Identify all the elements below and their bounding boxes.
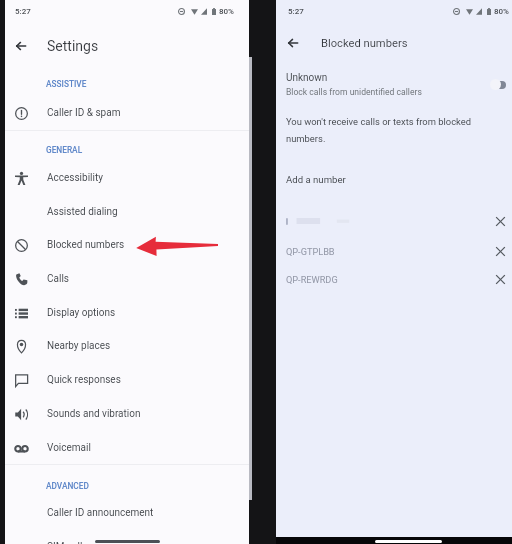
staticText: Display options [47,307,116,319]
button[interactable]: Remove blocked number [488,240,512,262]
staticText: ADVANCED [46,481,89,491]
button[interactable]: Nearby places [5,329,249,363]
button[interactable]: Calls [5,262,249,296]
button[interactable]: Quick responses [5,363,249,397]
button[interactable]: Navigate up [5,29,249,62]
staticText: Caller ID & spam [47,107,121,119]
button[interactable]: Remove blocked number [488,268,512,290]
button[interactable]: Caller ID announcement [5,496,249,530]
button[interactable]: Blocked numbers [5,228,249,262]
staticText: You won't receive calls or texts from bl… [286,116,472,127]
button[interactable]: Remove blocked number [488,210,512,232]
button[interactable]: Voicemail [5,431,249,465]
button[interactable]: QP-GTPLBB [276,240,512,262]
button[interactable]: SIM call manager [5,530,249,544]
staticText: QP-GTPLBB [286,246,335,257]
staticText: QP-REWRDG [286,274,338,285]
button[interactable]: Display options [5,296,249,330]
staticText: Blocked numbers [321,37,408,50]
staticText: Add a number [286,174,346,185]
button[interactable]: Unknown [276,69,512,99]
staticText: Settings [47,38,99,54]
button[interactable]: Navigate up [5,29,37,62]
staticText: Unknown [286,72,328,84]
staticText: GENERAL [46,145,83,155]
staticText: 80% [219,7,234,16]
staticText: 5:27 [288,7,304,16]
staticText: Accessibility [47,172,103,184]
button[interactable]: QP-REWRDG [276,268,512,290]
button[interactable]: Caller ID & spam [5,96,249,130]
button[interactable]: Sounds and vibration [5,397,249,431]
button[interactable]: Remove blocked number [276,210,512,232]
staticText: Assisted dialing [47,206,118,218]
staticText: Sounds and vibration [47,408,141,420]
button[interactable]: Assisted dialing [5,195,249,229]
staticText: numbers. [286,133,326,144]
staticText: Quick responses [47,374,121,386]
staticText: Block calls from unidentified callers [286,87,422,97]
staticText: 80% [494,7,509,16]
staticText: Calls [47,273,69,285]
button[interactable]: Navigate up [276,27,309,59]
staticText: ASSISTIVE [46,79,87,89]
button[interactable]: Add a number [276,169,512,189]
staticText: Nearby places [47,340,111,352]
staticText: Caller ID announcement [47,507,154,519]
staticText: Blocked numbers [47,239,125,251]
staticText: Voicemail [47,442,91,454]
staticText: 5:27 [15,7,31,16]
staticText: SIM call manager [47,541,125,544]
button[interactable]: Navigate up [276,27,512,59]
button[interactable]: Accessibility [5,161,249,195]
